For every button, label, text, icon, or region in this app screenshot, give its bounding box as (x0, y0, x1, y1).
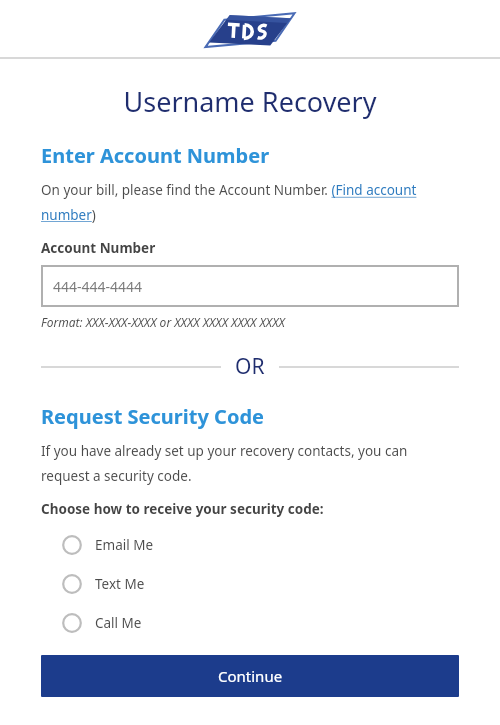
staticText: Choose how to receive your security code… (41, 500, 324, 518)
staticText: Account Number (41, 239, 156, 257)
other: TDS logo (205, 12, 295, 48)
staticText: Continue (218, 666, 283, 686)
button[interactable]: Email Me (41, 525, 459, 564)
staticText: 444-444-4444 (53, 277, 143, 296)
button[interactable]: 444-444-4444 (41, 265, 459, 307)
button[interactable]: Continue (41, 655, 459, 697)
button[interactable]: Text Me (41, 564, 459, 603)
staticText: If you have already set up your recovery… (41, 442, 459, 485)
staticText: Call Me (95, 614, 142, 632)
staticText: Email Me (95, 536, 154, 554)
staticText: Username Recovery (0, 83, 500, 120)
staticText: Enter Account Number (41, 142, 270, 169)
button[interactable]: Call Me (41, 603, 459, 642)
staticText: OR (235, 352, 265, 381)
staticText: On your bill, please find the Account Nu… (41, 181, 459, 224)
staticText: Request Security Code (41, 403, 264, 430)
staticText: Format: XXX-XXX-XXXX or XXXX XXXX XXXX X… (41, 314, 285, 330)
staticText: Text Me (95, 575, 145, 593)
